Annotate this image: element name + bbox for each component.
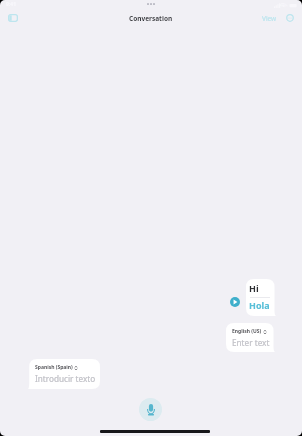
staticText: Hi xyxy=(249,282,259,294)
button[interactable]: Spanish (Spain) xyxy=(28,359,100,389)
staticText: View xyxy=(262,14,277,23)
button[interactable]: Hi xyxy=(246,279,276,316)
staticText: Introducir texto xyxy=(35,373,96,384)
button[interactable]: Microphone xyxy=(139,398,162,421)
button[interactable]: Drag handle xyxy=(147,3,155,5)
button[interactable]: More options xyxy=(282,10,298,26)
staticText: Spanish (Spain) xyxy=(35,364,73,371)
staticText: English (US) xyxy=(232,328,262,335)
staticText: Hola xyxy=(249,299,270,311)
staticText: Enter text xyxy=(232,337,270,348)
button[interactable]: View xyxy=(257,10,282,27)
button[interactable]: English (US) xyxy=(226,323,275,352)
button[interactable]: Toggle sidebar xyxy=(2,7,24,29)
button[interactable]: Play audio xyxy=(226,293,244,311)
staticText: Conversation xyxy=(129,14,173,23)
